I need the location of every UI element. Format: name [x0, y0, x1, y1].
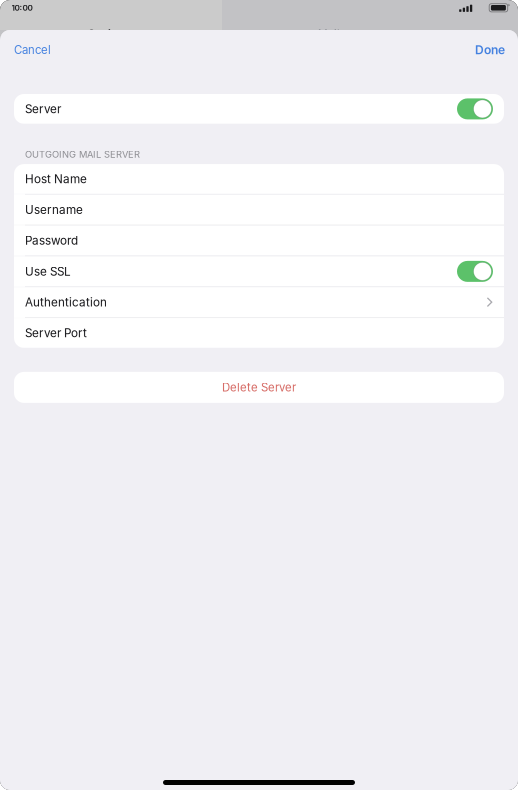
button[interactable]: Done	[463, 35, 518, 65]
button[interactable]: Use SSL	[14, 256, 504, 286]
staticText: Server Port	[25, 326, 87, 340]
button[interactable]: Server Port	[14, 318, 504, 348]
staticText: Host Name	[25, 172, 87, 186]
button[interactable]: Password	[14, 226, 504, 255]
button[interactable]: Username	[14, 195, 504, 225]
button[interactable]: Authentication	[14, 287, 504, 317]
staticText: Authentication	[25, 295, 107, 309]
button[interactable]: Host Name	[14, 164, 504, 194]
button[interactable]: Delete Server	[14, 372, 504, 403]
staticText: Mail	[318, 27, 340, 40]
staticText: Password	[25, 233, 78, 248]
staticText: Settings	[88, 27, 131, 40]
staticText: Account	[352, 27, 396, 40]
staticText: 10:00	[11, 3, 32, 13]
staticText: Delete Server	[222, 380, 296, 394]
button[interactable]: Server	[14, 94, 504, 124]
button[interactable]: Cancel	[0, 35, 63, 65]
staticText: Use SSL	[25, 264, 71, 278]
staticText: Done	[475, 43, 505, 57]
staticText: Username	[25, 203, 83, 217]
staticText: OUTGOING MAIL SERVER	[25, 149, 140, 160]
staticText: Cancel	[14, 43, 51, 57]
staticText: Server	[25, 102, 61, 116]
